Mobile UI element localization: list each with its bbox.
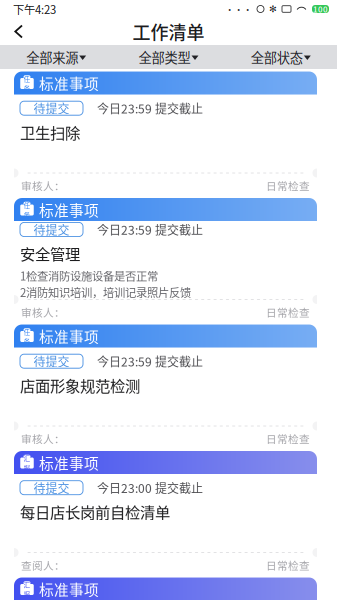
staticText: 下午4:23 xyxy=(13,1,56,17)
staticText: 今日23:59 提交截止 xyxy=(97,99,203,117)
staticText: ••• xyxy=(225,2,252,16)
staticText: 卫生扫除 xyxy=(20,121,80,143)
staticText: 工作清单 xyxy=(132,18,204,45)
staticText: 标准事项 xyxy=(39,452,99,473)
staticText: 待提交 xyxy=(33,221,69,238)
staticText: 安全管理 xyxy=(20,242,80,264)
staticText: 店面形象规范检测 xyxy=(20,374,140,396)
staticText: 审核人： xyxy=(21,178,65,193)
staticText: 日常检查 xyxy=(266,304,310,320)
staticText: 每日店长岗前自检清单 xyxy=(20,500,170,523)
staticText: 1检查消防设施设备是否正常 xyxy=(20,267,158,284)
button[interactable]: 汇报 xyxy=(14,451,317,573)
staticText: 2消防知识培训，培训记录照片反馈 xyxy=(20,284,191,300)
staticText: 审核人： xyxy=(21,431,65,446)
staticText: 全部类型 xyxy=(138,47,190,67)
button[interactable]: 全部状态 xyxy=(225,45,337,69)
staticText: 标准事项 xyxy=(39,325,99,347)
staticText: 任务 xyxy=(23,327,30,346)
staticText: 待提交 xyxy=(33,352,69,370)
staticText: ✻ xyxy=(269,4,277,14)
staticText: 标准事项 xyxy=(39,199,99,220)
staticText: 标准事项 xyxy=(39,578,99,600)
staticText: 待提交 xyxy=(33,479,69,496)
staticText: 查阅人： xyxy=(21,557,65,573)
button[interactable]: 任务 xyxy=(14,198,317,320)
staticText: 汇报 xyxy=(23,580,30,599)
staticText: 今日23:00 提交截止 xyxy=(97,479,203,496)
button[interactable]: 汇报 xyxy=(14,577,317,600)
button[interactable]: 任务 xyxy=(14,324,317,446)
staticText: 日常检查 xyxy=(266,431,310,446)
staticText: 审核人： xyxy=(21,304,65,320)
button[interactable]: 全部来源 xyxy=(0,45,112,69)
button[interactable]: 全部类型 xyxy=(112,45,225,69)
staticText: 全部来源 xyxy=(26,47,78,67)
staticText: 待提交 xyxy=(33,99,69,117)
staticText: 日常检查 xyxy=(266,557,310,573)
button[interactable]: Back xyxy=(0,18,38,45)
staticText: 今日23:59 提交截止 xyxy=(97,221,203,238)
staticText: 标准事项 xyxy=(39,72,99,94)
button[interactable]: 任务 xyxy=(14,71,317,193)
staticText: 日常检查 xyxy=(266,178,310,193)
staticText: 任务 xyxy=(23,200,30,220)
staticText: 全部状态 xyxy=(251,47,303,67)
staticText: 任务 xyxy=(23,74,30,93)
staticText: 100 xyxy=(313,3,328,15)
staticText: 汇报 xyxy=(23,453,30,473)
staticText: 今日23:59 提交截止 xyxy=(97,352,203,370)
